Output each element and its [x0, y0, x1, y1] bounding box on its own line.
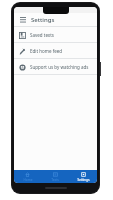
button[interactable]: Texts	[41, 170, 69, 183]
button[interactable]: Edit home feed	[14, 43, 97, 58]
button[interactable]: Open navigation menu	[18, 15, 27, 24]
staticText: Settings	[77, 178, 90, 182]
staticText: Support us by watching ads	[30, 64, 89, 70]
staticText: Settings	[31, 16, 55, 24]
staticText: Edit home feed	[30, 48, 63, 54]
button[interactable]: Support us by watching ads	[14, 59, 97, 74]
button[interactable]: Open navigation menu	[14, 13, 97, 26]
button[interactable]: Home	[14, 170, 41, 183]
staticText: Home	[23, 178, 33, 182]
button[interactable]: Saved texts	[14, 27, 97, 42]
staticText: Saved texts	[30, 32, 54, 38]
staticText: Texts	[51, 178, 59, 182]
button[interactable]: Settings	[69, 170, 97, 183]
